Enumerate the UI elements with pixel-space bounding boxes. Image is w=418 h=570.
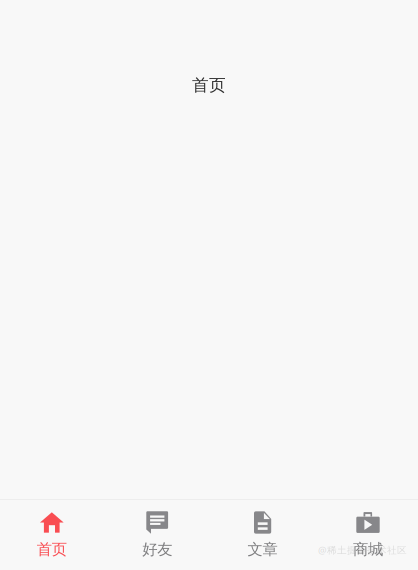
button[interactable]: 好友 (104, 500, 210, 570)
button[interactable]: 首页 (0, 500, 104, 570)
staticText: 首页 (37, 540, 67, 559)
staticText: @稀土掘金技术社区 (318, 544, 407, 556)
staticText: 商城 (353, 540, 383, 559)
button[interactable]: 商城 (315, 500, 418, 570)
button[interactable]: 文章 (210, 500, 315, 570)
staticText: 文章 (248, 540, 278, 559)
staticText: 好友 (142, 540, 172, 559)
staticText: 首页 (192, 75, 226, 95)
